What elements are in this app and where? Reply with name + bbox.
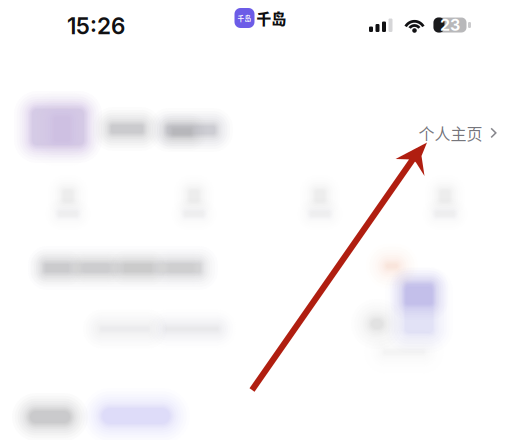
- staticText: 千岛: [256, 7, 286, 29]
- button[interactable]: 个人主页: [409, 114, 506, 152]
- staticText: 23: [440, 15, 460, 35]
- staticText: 千岛: [237, 13, 251, 23]
- staticText: 15:26: [67, 12, 125, 40]
- staticText: 个人主页: [418, 121, 482, 145]
